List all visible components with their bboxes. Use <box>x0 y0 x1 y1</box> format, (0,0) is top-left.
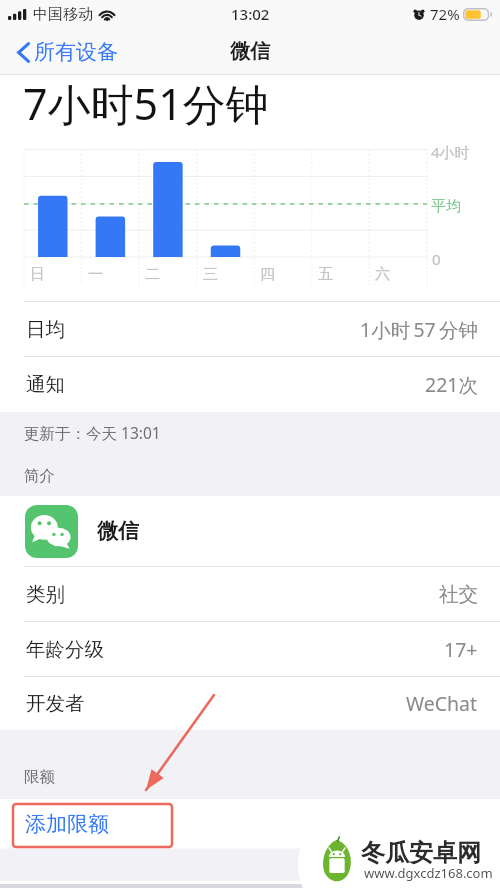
button[interactable]: 添加限额 <box>0 799 500 849</box>
staticText: 六 <box>375 265 390 284</box>
button[interactable]: 微信 <box>0 496 500 566</box>
button[interactable]: 日均 <box>0 302 500 356</box>
staticText: 17+ <box>444 636 478 663</box>
staticText: 开发者 <box>26 691 85 716</box>
staticText: 五 <box>318 265 333 284</box>
button[interactable]: 类别 <box>0 567 500 621</box>
staticText: 72% <box>430 4 460 24</box>
staticText: 类别 <box>26 582 65 607</box>
staticText: 7小时51分钟 <box>23 74 269 133</box>
button[interactable]: 年龄分级 <box>0 622 500 676</box>
staticText: www.dgxcdz168.com <box>364 864 493 882</box>
staticText: 13:02 <box>231 4 270 24</box>
staticText: WeChat <box>406 690 478 717</box>
staticText: 二 <box>145 265 160 284</box>
staticText: 更新于：今天 13:01 <box>24 422 161 443</box>
button[interactable]: 开发者 <box>0 677 500 730</box>
staticText: 221次 <box>425 371 478 398</box>
staticText: 年龄分级 <box>26 637 104 662</box>
button[interactable]: 通知 <box>0 357 500 411</box>
staticText: 日 <box>30 265 45 284</box>
staticText: 通知 <box>26 372 65 397</box>
staticText: 微信 <box>97 518 139 544</box>
staticText: 四 <box>260 265 275 284</box>
staticText: 日均 <box>26 317 65 342</box>
staticText: 简介 <box>24 466 55 486</box>
staticText: 添加限额 <box>25 811 109 837</box>
button[interactable]: 所有设备 <box>0 33 128 71</box>
staticText: 限额 <box>24 767 55 787</box>
staticText: 冬瓜安卓网 <box>361 838 481 868</box>
staticText: 0 <box>432 249 441 269</box>
staticText: 4小时 <box>431 142 470 162</box>
staticText: 社交 <box>439 582 478 607</box>
staticText: 中国移动 <box>33 5 93 24</box>
staticText: 所有设备 <box>34 39 118 65</box>
staticText: 三 <box>203 265 218 284</box>
staticText: 一 <box>88 265 103 284</box>
staticText: 1小时 57 分钟 <box>360 316 478 343</box>
staticText: 平均 <box>431 197 461 216</box>
staticText: 微信 <box>230 39 270 64</box>
